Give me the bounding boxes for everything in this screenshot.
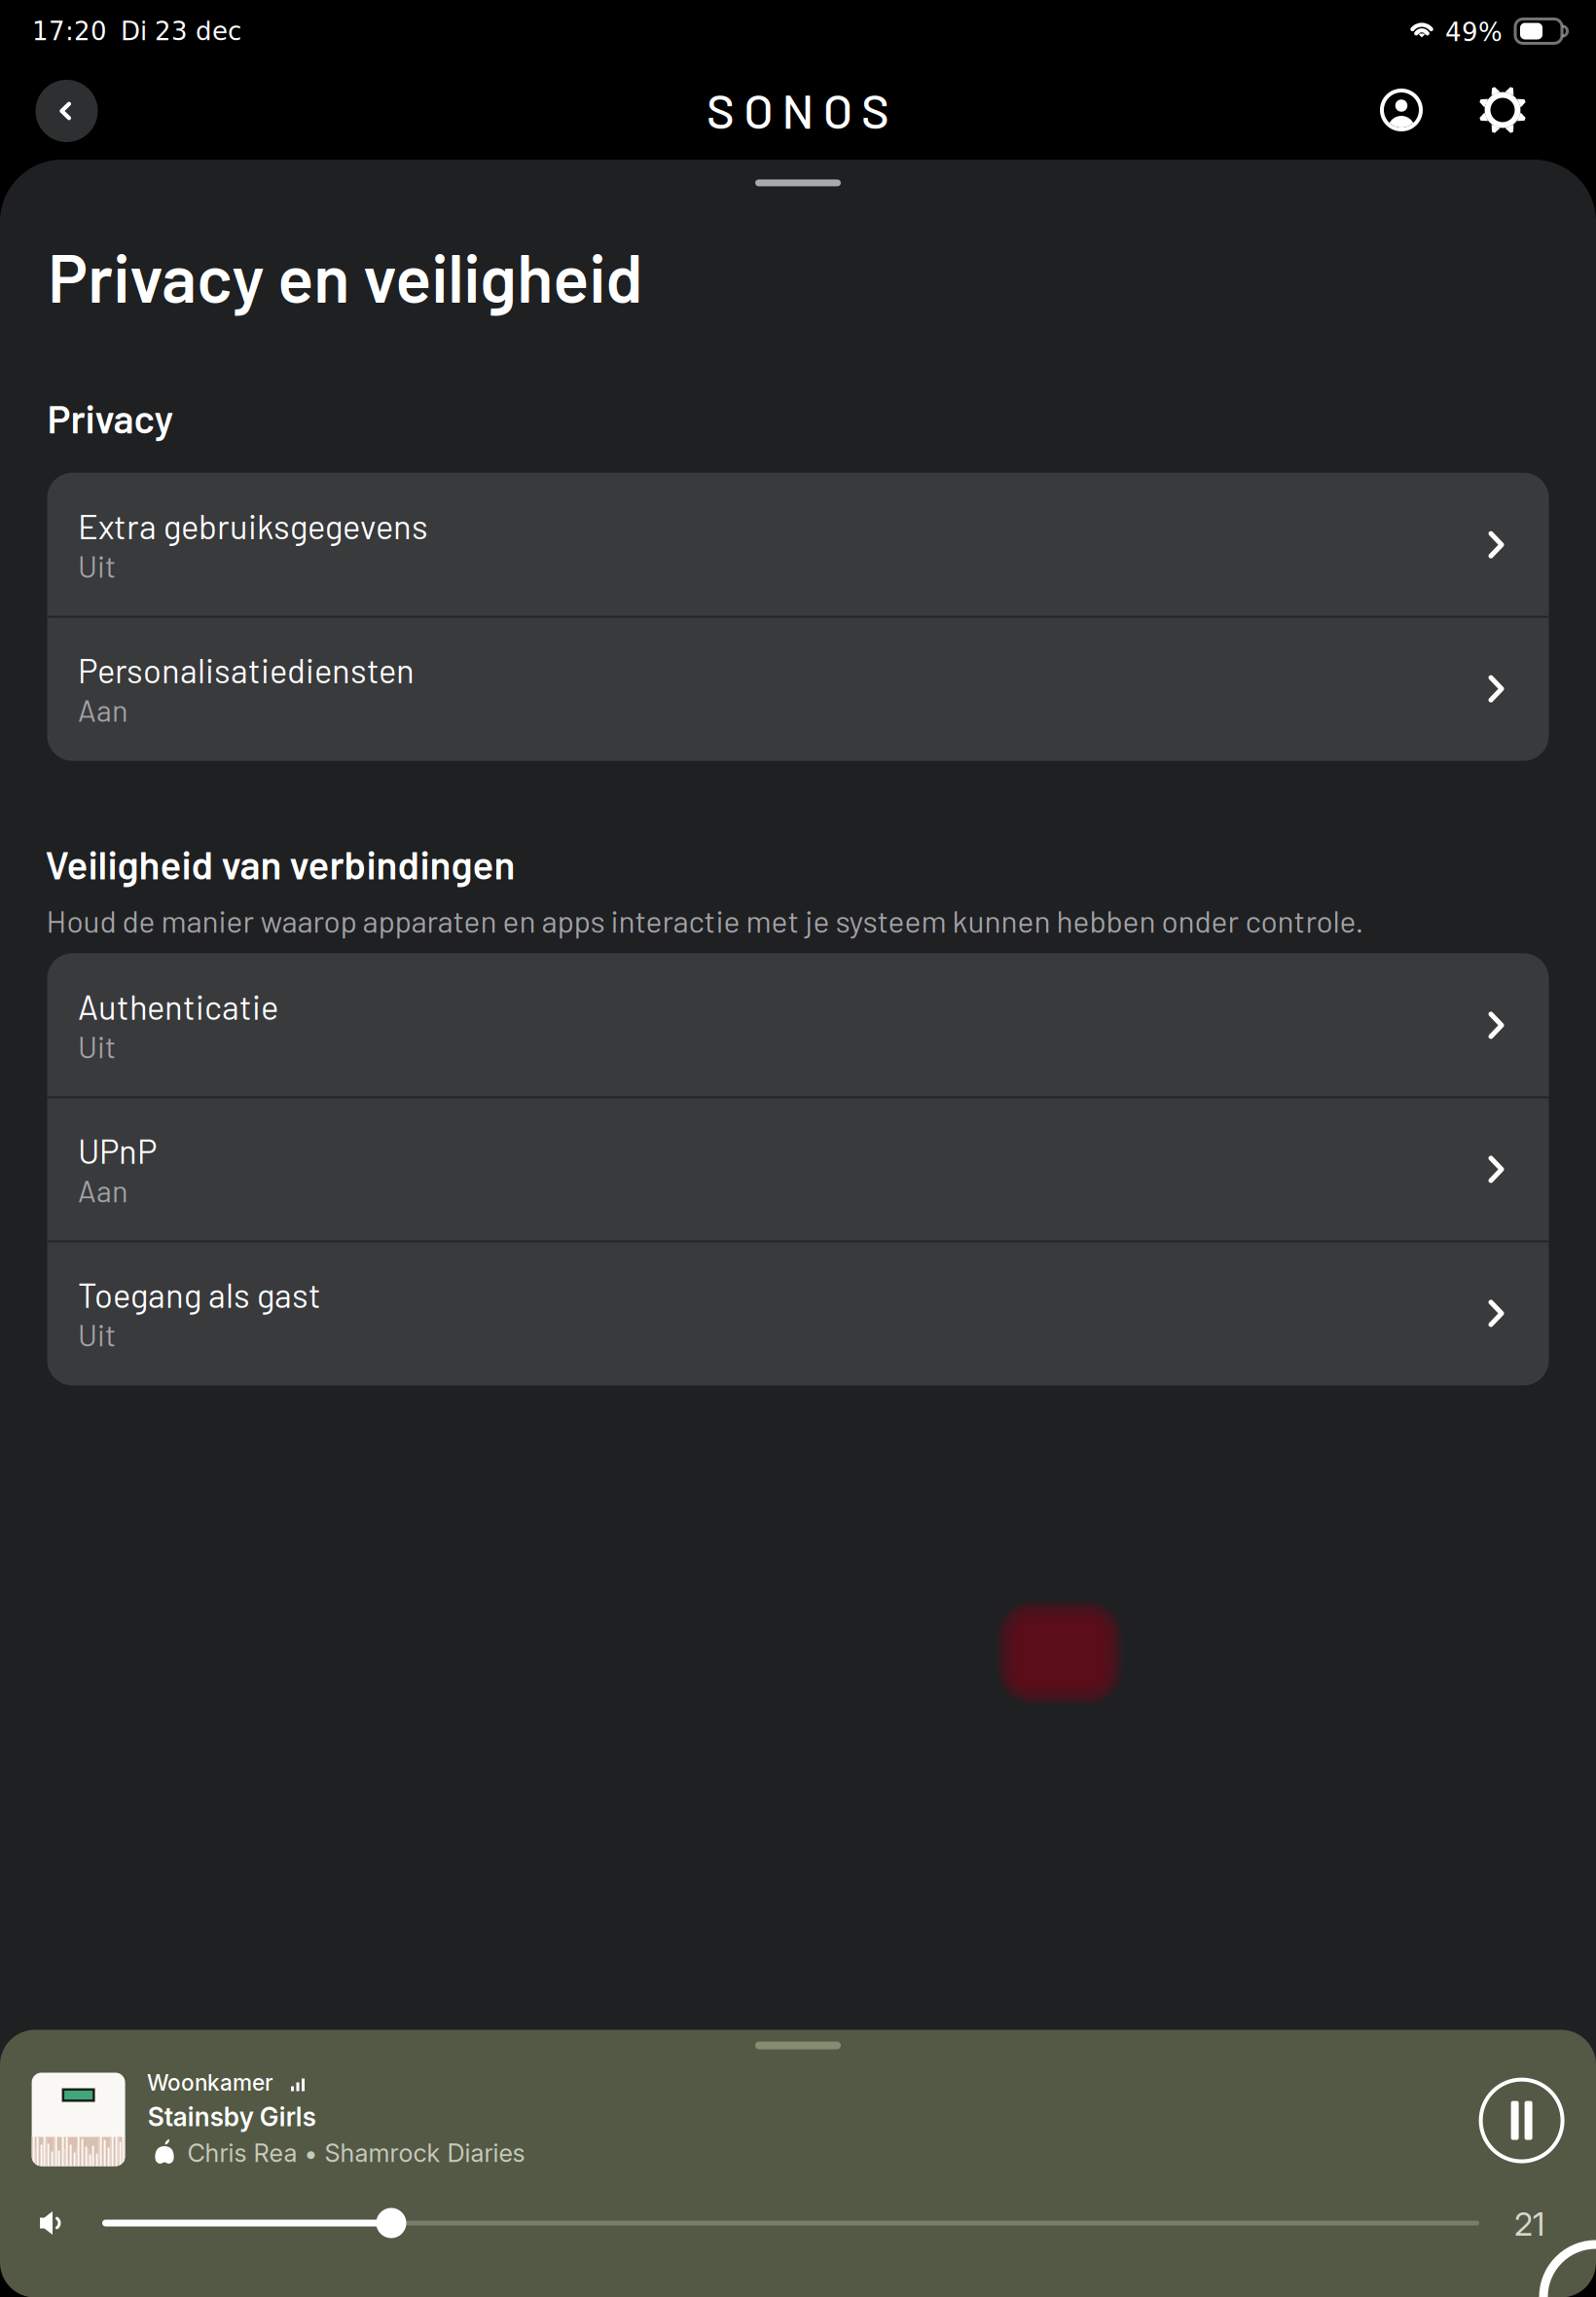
button[interactable]: Pause: [1475, 2074, 1568, 2167]
button[interactable]: Volume: [31, 2192, 1561, 2254]
staticText: 17:20: [32, 17, 107, 46]
button[interactable]: Account: [1376, 85, 1427, 135]
button[interactable]: Authenticatie: [47, 953, 1549, 1097]
staticText: N: [782, 81, 814, 138]
staticText: S: [861, 81, 890, 138]
staticText: Privacy en veiligheid: [48, 236, 642, 316]
staticText: UPnP: [78, 1130, 157, 1170]
staticText: Toegang als gast: [78, 1274, 321, 1315]
staticText: Woonkamer: [147, 2069, 273, 2096]
staticText: O: [823, 81, 852, 138]
staticText: Extra gebruiksgegevens: [78, 506, 428, 546]
staticText: Houd de manier waarop apparaten en apps …: [46, 902, 1364, 939]
staticText: Chris Rea • Shamrock Diaries: [187, 2138, 525, 2168]
staticText: 49%: [1445, 18, 1503, 47]
staticText: Veiligheid van verbindingen: [45, 840, 515, 887]
button[interactable]: Personalisatiediensten: [47, 617, 1549, 761]
staticText: Di 23 dec: [121, 17, 241, 46]
button[interactable]: Woonkamer: [31, 2073, 576, 2180]
staticText: Uit: [78, 548, 116, 584]
button[interactable]: UPnP: [47, 1097, 1549, 1241]
staticText: Stainsby Girls: [148, 2101, 316, 2132]
staticText: Privacy: [47, 394, 174, 441]
staticText: Aan: [78, 1172, 129, 1208]
staticText: Uit: [78, 1028, 116, 1064]
button[interactable]: Back: [36, 80, 98, 142]
staticText: Personalisatiediensten: [78, 650, 415, 690]
staticText: S: [706, 81, 735, 138]
button[interactable]: Extra gebruiksgegevens: [47, 473, 1549, 617]
button[interactable]: Settings: [1477, 85, 1528, 135]
staticText: O: [744, 81, 773, 138]
staticText: Authenticatie: [78, 986, 278, 1026]
button[interactable]: Toegang als gast: [47, 1241, 1549, 1385]
staticText: Aan: [78, 692, 129, 728]
staticText: 21: [1514, 2204, 1545, 2244]
staticText: Uit: [78, 1316, 116, 1352]
